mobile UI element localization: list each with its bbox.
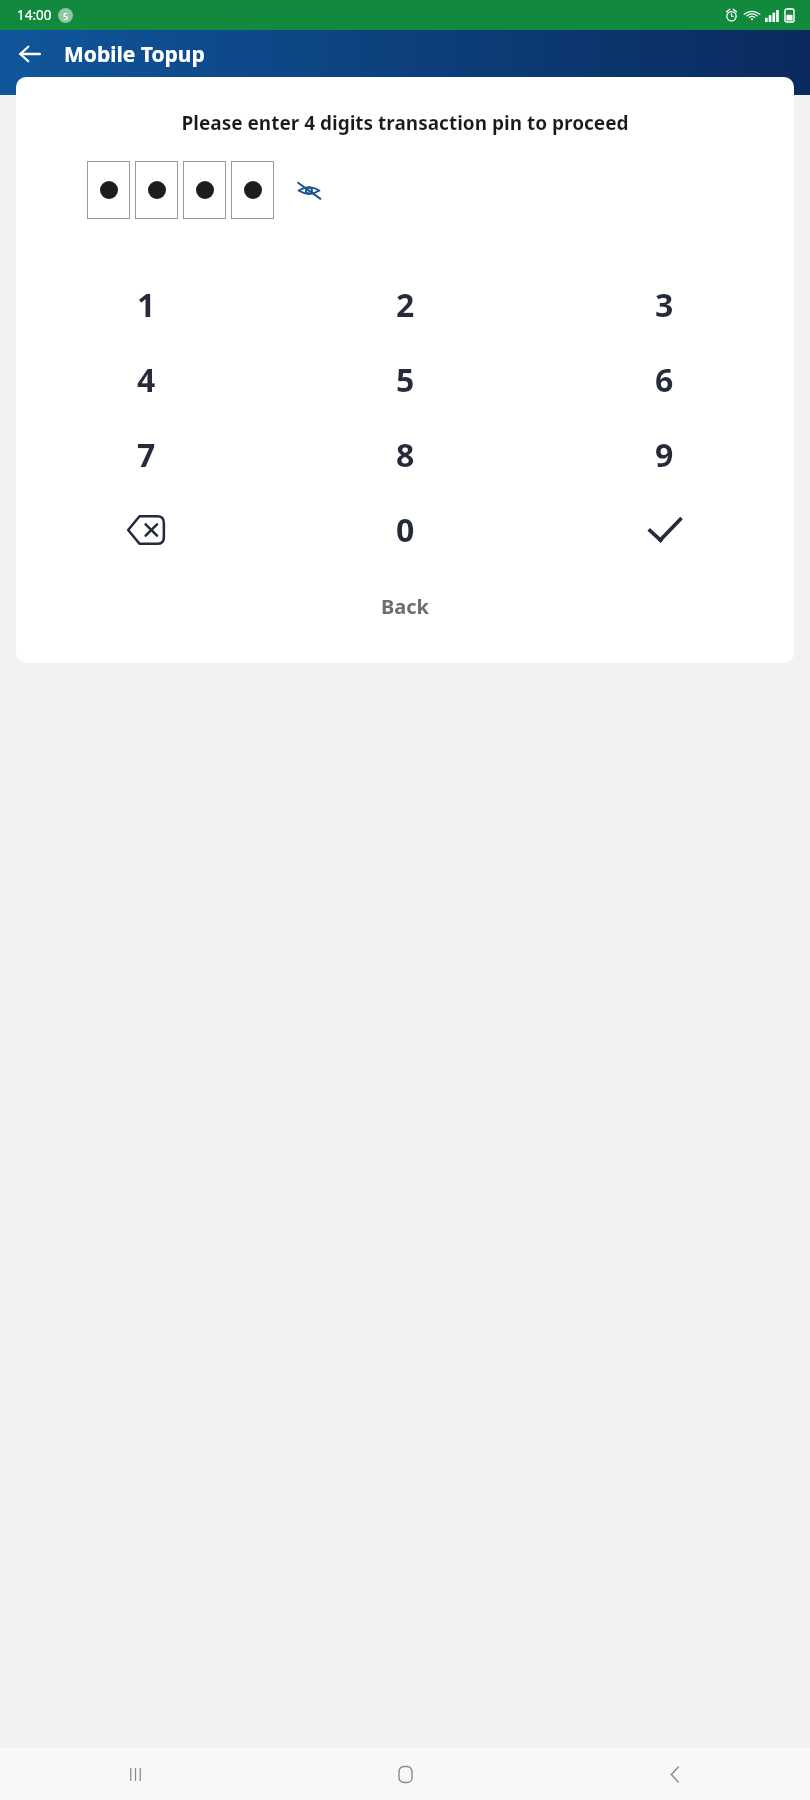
staticText: Please enter 4 digits transaction pin to… <box>181 110 629 136</box>
button[interactable]: Show PIN <box>290 171 328 209</box>
button[interactable]: 6 <box>535 342 794 417</box>
button[interactable]: 0 <box>276 492 535 567</box>
button[interactable]: Confirm <box>535 492 794 567</box>
button[interactable]: PIN digit 1 <box>87 161 130 219</box>
staticText: 5 <box>63 10 69 22</box>
button[interactable]: PIN digit 3 <box>183 161 226 219</box>
staticText: 5 <box>396 358 415 402</box>
staticText: Mobile Topup <box>64 40 205 69</box>
button[interactable]: 8 <box>276 417 535 492</box>
staticText: Back <box>381 593 429 620</box>
staticText: 1 <box>137 283 156 327</box>
staticText: 14:00 <box>17 6 52 24</box>
button[interactable]: PIN digit 2 <box>135 161 178 219</box>
staticText: 6 <box>655 358 674 402</box>
staticText: 0 <box>396 508 415 552</box>
button[interactable]: Backspace <box>16 492 276 567</box>
button[interactable]: 5 <box>276 342 535 417</box>
button[interactable]: 1 <box>16 267 276 342</box>
button[interactable]: 2 <box>276 267 535 342</box>
button[interactable]: Back <box>355 585 455 628</box>
staticText: 2 <box>396 283 415 327</box>
button[interactable]: Recent apps <box>0 1748 270 1800</box>
staticText: 4 <box>137 358 156 402</box>
button[interactable]: 4 <box>16 342 276 417</box>
button[interactable]: 3 <box>535 267 794 342</box>
staticText: 7 <box>137 433 156 477</box>
staticText: 9 <box>655 433 674 477</box>
staticText: 8 <box>396 433 415 477</box>
button[interactable]: PIN digit 4 <box>231 161 274 219</box>
button[interactable]: Back <box>540 1748 810 1800</box>
button[interactable]: Home <box>270 1748 540 1800</box>
button[interactable]: Back <box>8 32 52 76</box>
button[interactable]: 7 <box>16 417 276 492</box>
staticText: 3 <box>655 283 674 327</box>
button[interactable]: 9 <box>535 417 794 492</box>
